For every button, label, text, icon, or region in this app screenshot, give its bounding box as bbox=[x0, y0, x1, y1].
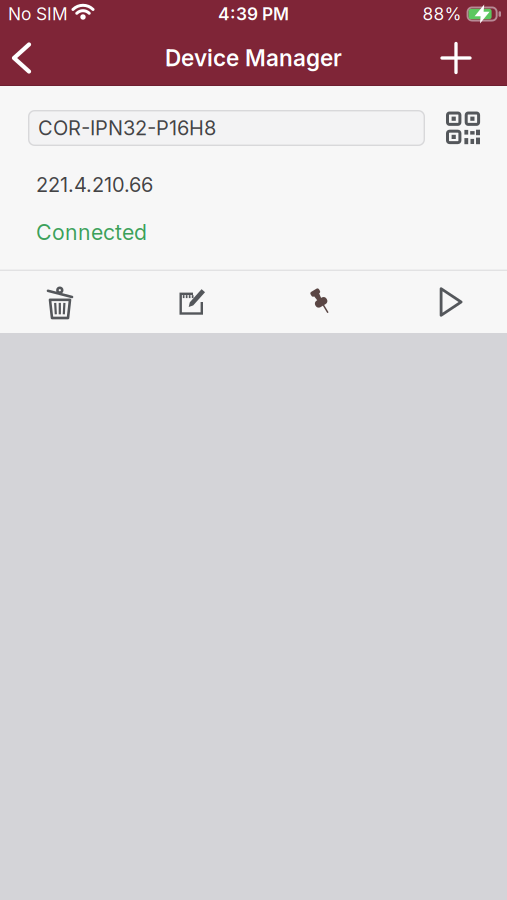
staticText: COR-IPN32-P16H8 bbox=[38, 116, 216, 140]
button[interactable]: COR-IPN32-P16H8 bbox=[28, 110, 425, 146]
staticText: No SIM bbox=[8, 4, 68, 24]
button[interactable]: Add Device bbox=[428, 31, 507, 84]
button[interactable]: Scan QR Code bbox=[446, 111, 480, 144]
staticText: Connected bbox=[36, 220, 147, 245]
button[interactable]: Pin bbox=[293, 271, 350, 333]
button[interactable]: Edit bbox=[162, 271, 221, 332]
button[interactable]: Back bbox=[0, 30, 52, 85]
staticText: 221.4.210.66 bbox=[36, 173, 153, 197]
button[interactable]: Delete bbox=[30, 271, 90, 333]
button[interactable]: Play bbox=[421, 271, 480, 332]
staticText: 88% bbox=[423, 4, 462, 24]
staticText: 4:39 PM bbox=[218, 4, 289, 24]
staticText: Device Manager bbox=[165, 45, 342, 71]
